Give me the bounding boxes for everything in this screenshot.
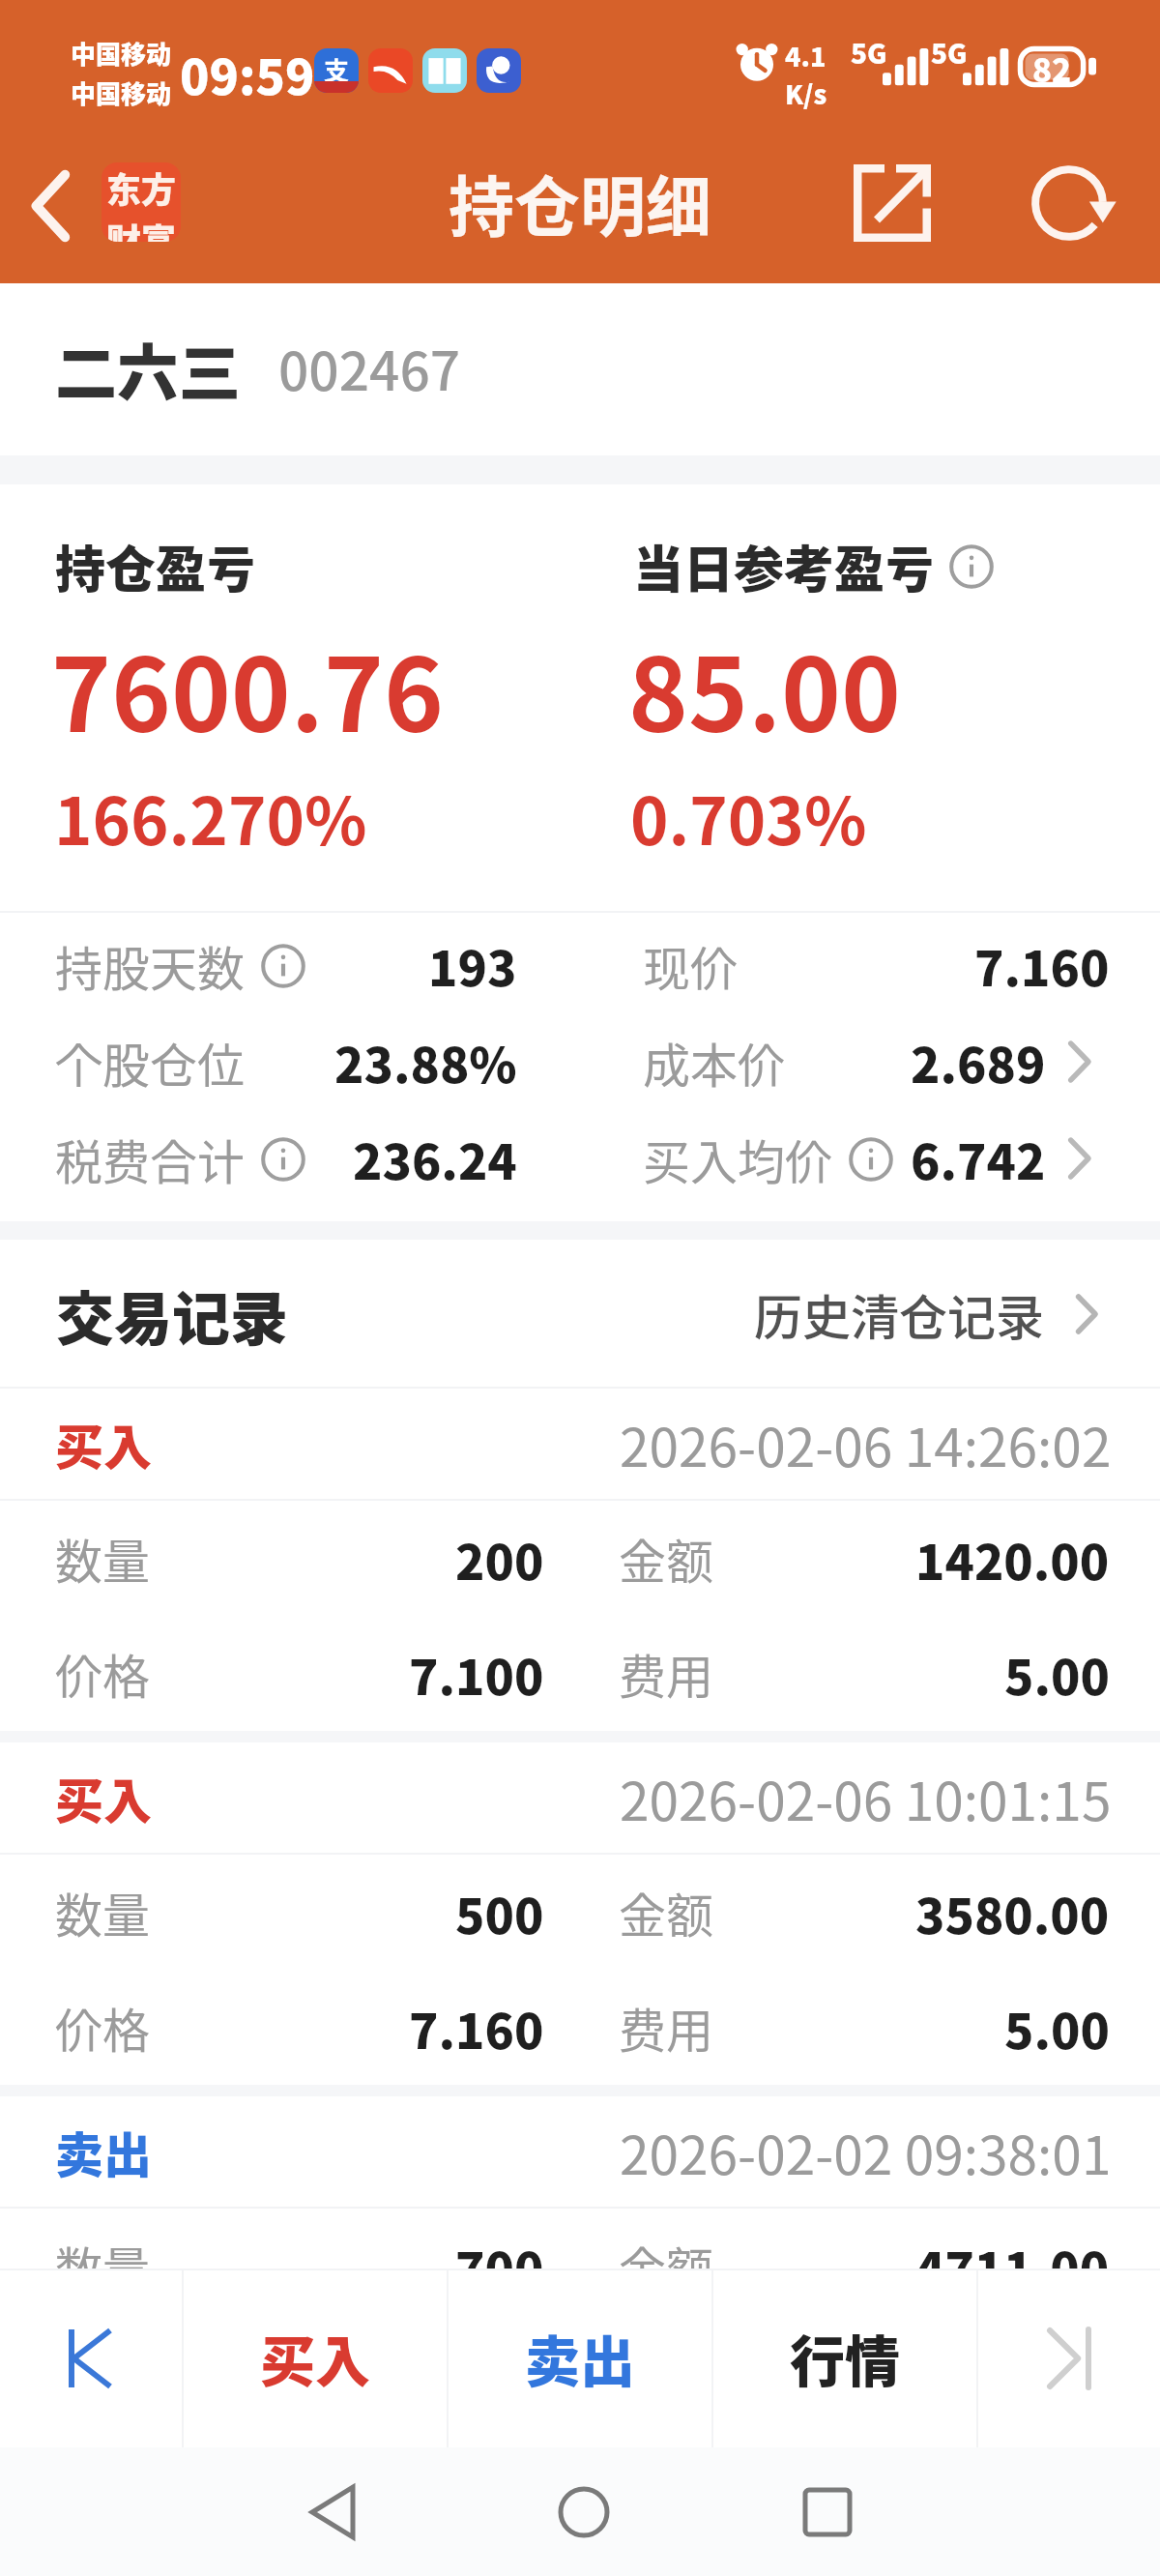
staticText: 7.160 [409, 1993, 544, 2063]
staticText: 3580.00 [915, 1878, 1110, 1947]
staticText: 85.00 [628, 614, 901, 761]
staticText: 持仓明细 [449, 155, 712, 249]
button[interactable]: Back [0, 138, 101, 274]
staticText: 5.00 [1004, 1993, 1110, 2063]
staticText: 交易记录 [56, 1273, 288, 1357]
button[interactable]: Last page [978, 2269, 1160, 2447]
staticText: 买入 [55, 1409, 152, 1478]
staticText: 卖出 [55, 2117, 152, 2186]
staticText: 0.703% [630, 770, 867, 864]
staticText: 200 [455, 1524, 544, 1594]
staticText: 2026-02-06 14:26:02 [620, 1405, 1112, 1482]
button[interactable]: 历史清仓记录 [754, 1240, 1098, 1389]
button[interactable]: 行情 [713, 2269, 976, 2447]
staticText: 7.160 [974, 930, 1110, 1000]
staticText: 支 [324, 51, 350, 88]
staticText: 09:59 [180, 39, 315, 108]
staticText: 500 [455, 1878, 544, 1947]
staticText: 2026-02-06 10:01:15 [620, 1759, 1112, 1836]
staticText: 二六三 [55, 324, 241, 414]
staticText: 费用 [619, 1993, 714, 2062]
staticText: 成本价 [643, 1028, 786, 1097]
staticText: 价格 [55, 1639, 151, 1708]
staticText: 1420.00 [915, 1524, 1110, 1594]
staticText: 82 [1032, 45, 1072, 86]
staticText: 持股天数 [55, 931, 246, 1000]
staticText: 费用 [619, 1639, 714, 1708]
staticText: 6.742 [911, 1124, 1046, 1193]
staticText: 金额 [619, 2232, 714, 2300]
staticText: 数量 [55, 2232, 151, 2300]
staticText: 买入均价 [643, 1125, 833, 1193]
staticText: 2026-02-02 09:38:01 [620, 2113, 1112, 2190]
staticText: 东方 [106, 162, 177, 213]
staticText: 5.00 [1004, 2347, 1110, 2416]
button[interactable]: 买入 [184, 2269, 447, 2447]
staticText: 价格 [55, 2347, 151, 2415]
staticText: 中国移动 [71, 35, 172, 72]
staticText: 236.24 [353, 1124, 517, 1193]
staticText: 5G [851, 33, 887, 73]
staticText: 7600.76 [51, 614, 444, 761]
button[interactable]: Refresh [1001, 145, 1146, 261]
staticText: 财富 [106, 214, 177, 242]
staticText: 费用 [619, 2347, 714, 2415]
staticText: 4.1 [785, 37, 826, 74]
staticText: 193 [428, 930, 517, 1000]
staticText: 买入 [260, 2318, 370, 2398]
staticText: 价格 [55, 1993, 151, 2062]
staticText: 卖出 [525, 2318, 635, 2398]
staticText: 持仓盈亏 [55, 530, 257, 602]
staticText: K/s [785, 74, 827, 112]
staticText: 23.88% [334, 1027, 517, 1097]
staticText: 税费合计 [55, 1125, 246, 1193]
staticText: 5.00 [1004, 1639, 1110, 1709]
staticText: 数量 [55, 1524, 151, 1593]
staticText: 个股仓位 [55, 1028, 246, 1097]
staticText: 5G [931, 33, 968, 73]
button[interactable]: Recent apps [769, 2447, 885, 2576]
staticText: 002467 [278, 329, 461, 406]
button[interactable]: Back [275, 2447, 391, 2576]
staticText: 中国移动 [71, 74, 172, 111]
staticText: 166.270% [54, 770, 367, 864]
button[interactable]: First page [0, 2269, 182, 2447]
button[interactable]: 卖出 [449, 2269, 711, 2447]
staticText: 买入 [55, 1763, 152, 1832]
staticText: 行情 [790, 2318, 900, 2398]
staticText: 当日参考盈亏 [633, 530, 936, 602]
staticText: 数量 [55, 1878, 151, 1947]
staticText: 金额 [619, 1524, 714, 1593]
staticText: 4711.00 [915, 2232, 1110, 2301]
button[interactable]: Home [526, 2447, 642, 2576]
staticText: 历史清仓记录 [754, 1279, 1044, 1349]
staticText: 金额 [619, 1878, 714, 1947]
staticText: 现价 [643, 931, 739, 1000]
staticText: 6.730 [409, 2347, 544, 2416]
staticText: 700 [455, 2232, 544, 2301]
staticText: 2.689 [911, 1027, 1046, 1097]
button[interactable]: Share [820, 145, 965, 261]
staticText: 7.100 [409, 1639, 544, 1709]
